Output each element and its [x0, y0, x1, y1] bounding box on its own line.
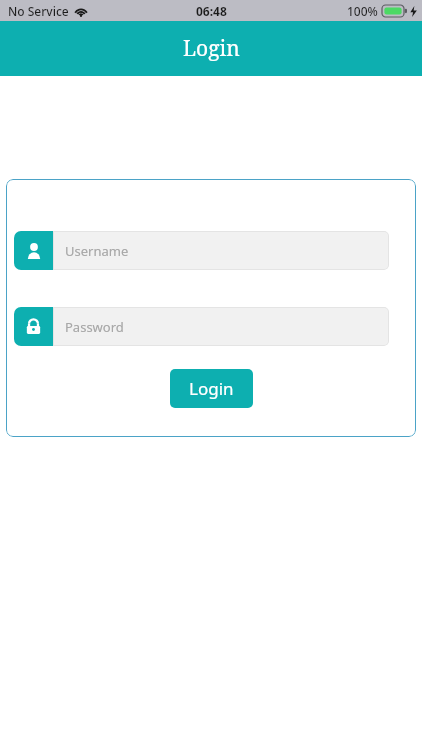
staticText: Login — [183, 34, 240, 63]
staticText: Password — [65, 318, 124, 336]
staticText: 100% — [347, 3, 378, 19]
staticText: Username — [65, 242, 129, 260]
staticText: No Service — [8, 3, 69, 19]
button[interactable]: Username — [14, 231, 389, 270]
staticText: Login — [189, 377, 234, 400]
button[interactable]: Login — [170, 369, 253, 408]
staticText: 06:48 — [196, 3, 227, 19]
other: Password — [14, 307, 53, 346]
other: Username — [14, 231, 53, 270]
button[interactable]: Password — [14, 307, 389, 346]
